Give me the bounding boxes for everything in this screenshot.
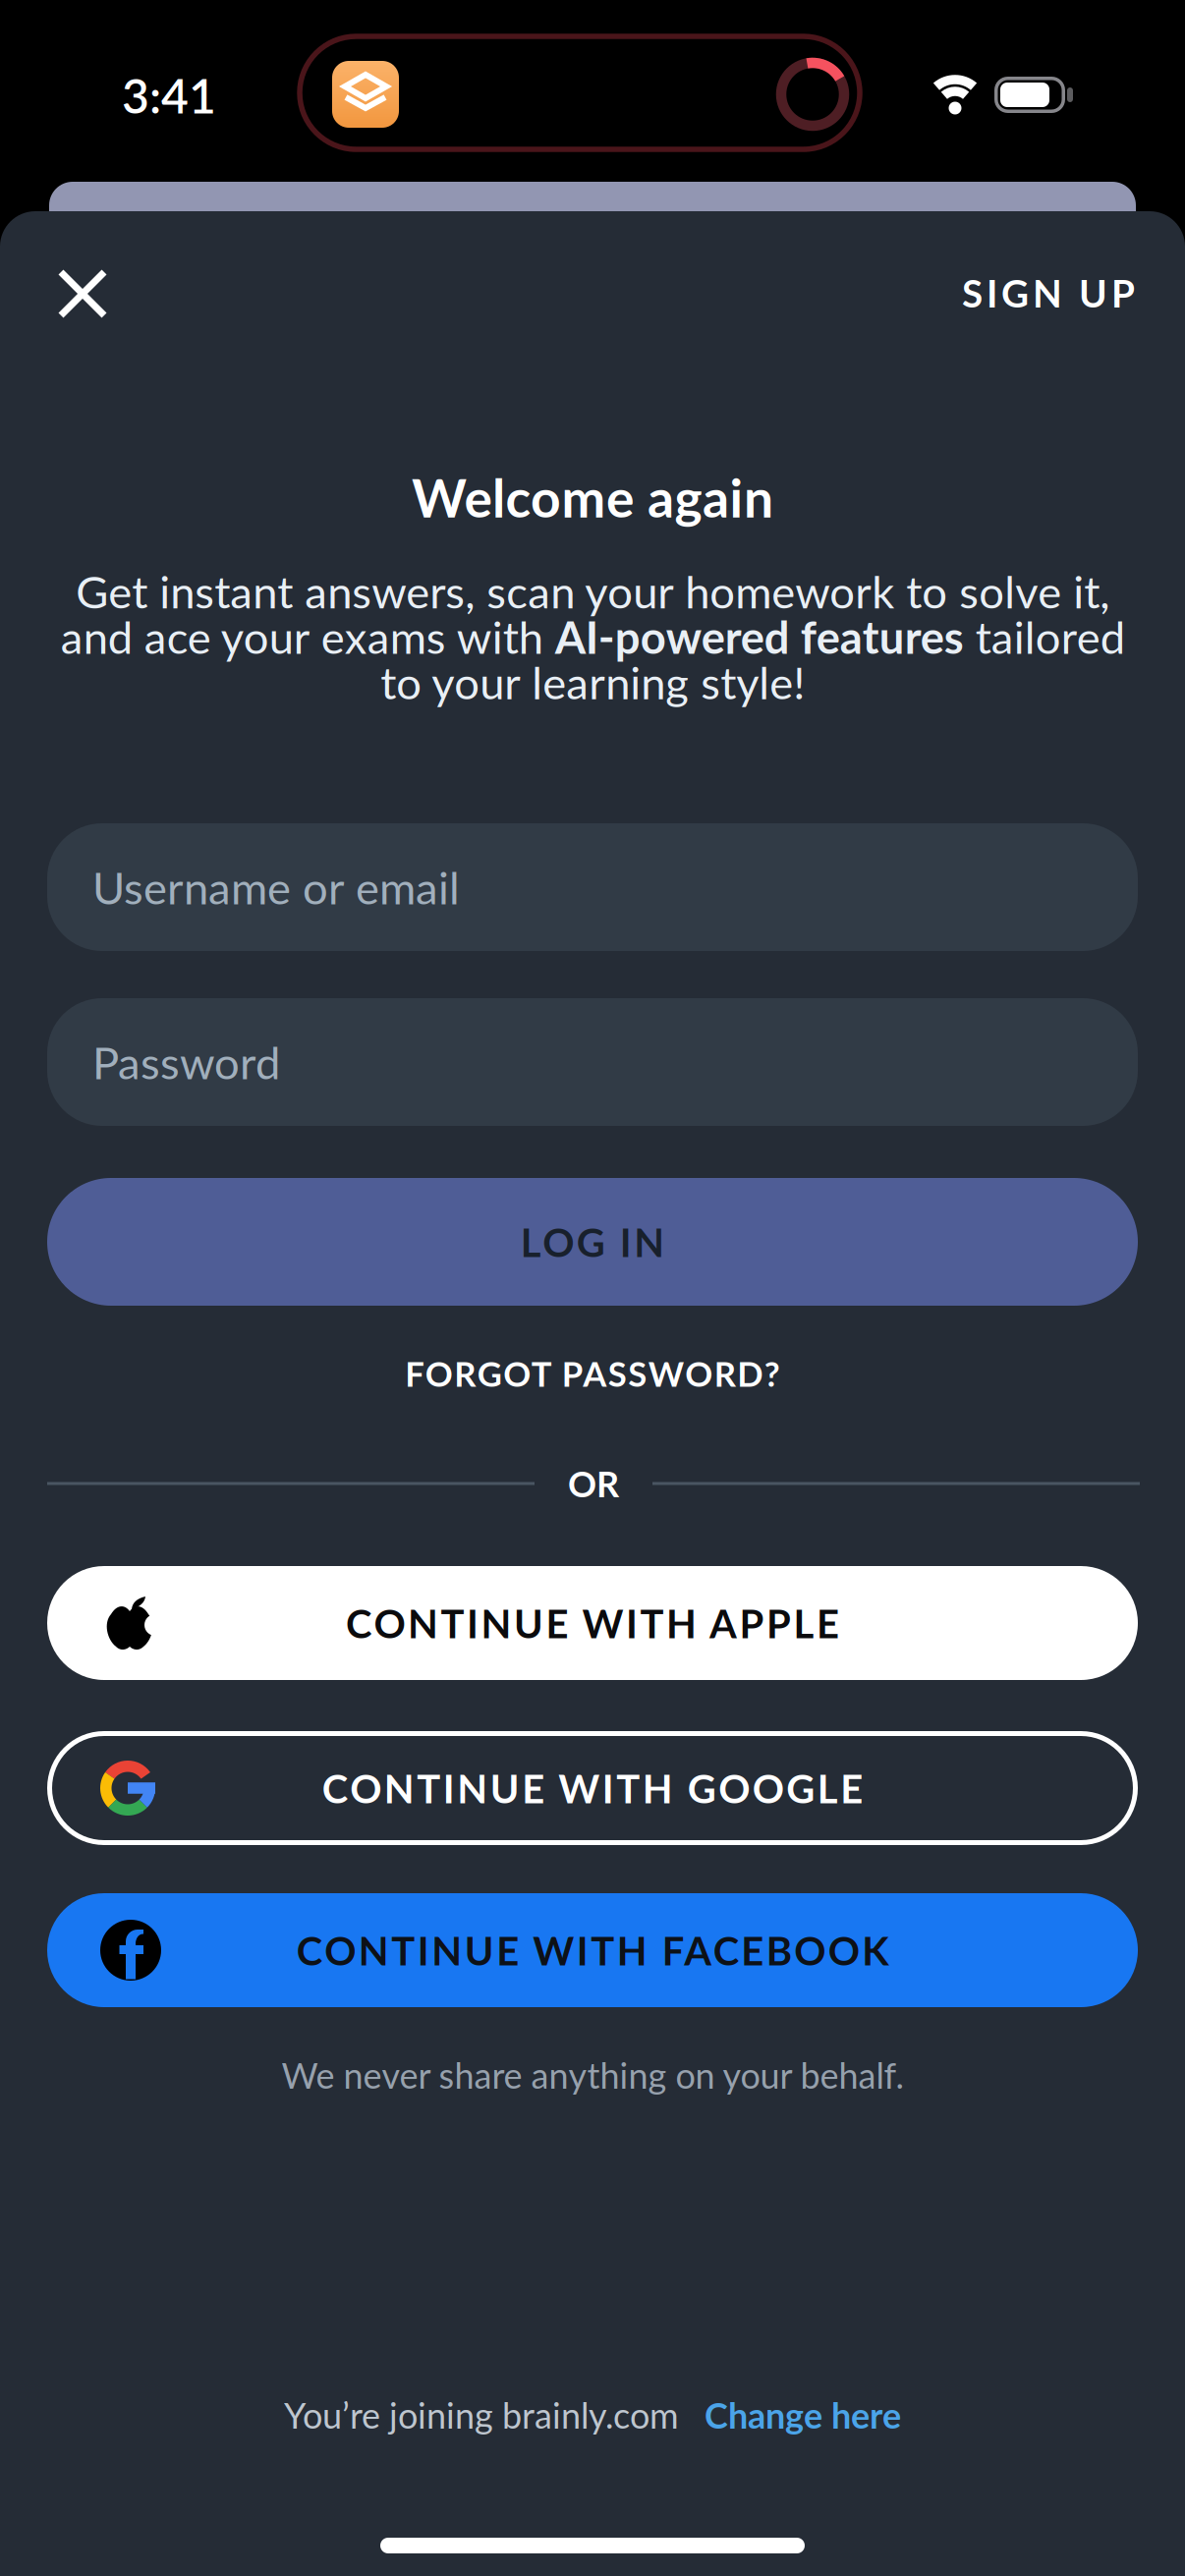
button[interactable]: FORGOT PASSWORD? — [249, 1346, 936, 1401]
staticText: We never share anything on your behalf. — [282, 2057, 903, 2093]
staticText: CONTINUE WITH APPLE — [346, 1603, 839, 1643]
button[interactable]: Username or email — [47, 823, 1138, 951]
button[interactable]: CONTINUE WITH GOOGLE — [47, 1731, 1138, 1845]
button[interactable]: Change here — [705, 2397, 901, 2433]
staticText: FORGOT PASSWORD? — [405, 1356, 780, 1391]
staticText: LOG IN — [521, 1222, 665, 1262]
staticText: OR — [568, 1465, 619, 1501]
button[interactable]: LOG IN — [47, 1178, 1138, 1306]
staticText: Welcome again — [412, 470, 773, 524]
button[interactable]: Close — [38, 250, 127, 338]
button[interactable]: CONTINUE WITH APPLE — [47, 1566, 1138, 1680]
button[interactable]: Password — [47, 998, 1138, 1126]
staticText: CONTINUE WITH FACEBOOK — [297, 1930, 889, 1970]
staticText: Password — [92, 1039, 280, 1085]
staticText: 3:41 — [122, 71, 216, 119]
staticText: Change here — [705, 2397, 901, 2433]
staticText: SIGN UP — [962, 273, 1135, 312]
staticText: Get instant answers, scan your homework … — [60, 568, 1125, 705]
staticText: CONTINUE WITH GOOGLE — [322, 1768, 863, 1808]
button[interactable]: SIGN UP — [840, 265, 1135, 320]
staticText: You’re joining brainly.com — [284, 2397, 679, 2433]
staticText: Username or email — [92, 864, 460, 910]
button[interactable]: CONTINUE WITH FACEBOOK — [47, 1893, 1138, 2007]
